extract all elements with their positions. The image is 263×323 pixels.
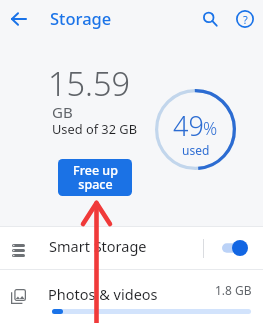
button[interactable]: Search xyxy=(193,2,227,36)
staticText: GB xyxy=(52,102,73,122)
staticText: 15.59 xyxy=(48,61,131,105)
staticText: Photos & videos xyxy=(48,284,158,304)
staticText: Smart Storage xyxy=(49,236,147,256)
staticText: Free up space xyxy=(73,162,118,193)
button[interactable]: Smart Storage toggle xyxy=(221,238,251,258)
button[interactable]: Help xyxy=(227,1,263,37)
button[interactable]: Back xyxy=(0,0,38,38)
staticText: 1.8 GB xyxy=(215,282,252,298)
button[interactable]: Smart Storage xyxy=(0,227,263,269)
staticText: Used of 32 GB xyxy=(52,120,137,137)
button[interactable]: Photos & videos xyxy=(0,270,263,323)
staticText: 49 xyxy=(173,107,204,144)
button[interactable]: Free up space xyxy=(58,159,132,196)
staticText: % xyxy=(203,116,218,140)
staticText: used xyxy=(182,142,210,158)
staticText: Storage xyxy=(50,7,112,29)
staticText: ? xyxy=(243,12,248,27)
